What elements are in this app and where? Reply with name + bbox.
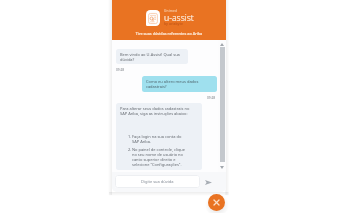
button[interactable]: Como eu altero meus dados cadastrais? [142,76,217,92]
staticText: 09:28 [116,68,125,72]
staticText: Tire suas dúvidas referentes ao Ariba [112,31,226,36]
button[interactable]: Bem vindo ao U-Assist! Qual sua dúvida? [116,49,188,64]
staticText: Para alterar seus dados cadastrais no SA… [120,106,196,116]
staticText: u-assist [164,12,194,24]
staticText: Unimed [164,9,178,13]
staticText: by ariabyte [164,21,183,26]
staticText: Faça login na sua conta do SAP Ariba. [132,134,186,144]
staticText: 09:28 [207,96,216,100]
button[interactable]: Enviar mensagem [201,175,215,189]
button[interactable]: Digite sua dúvida [115,175,200,188]
staticText: Digite sua dúvida [141,179,174,184]
staticText: No painel de controle, clique no seu nom… [132,147,186,167]
staticText: 1. [128,134,132,139]
button[interactable]: Fechar chat [208,194,225,211]
staticText: 2. [128,147,132,152]
staticText: Como eu altero meus dados cadastrais? [146,79,214,89]
staticText: Bem vindo ao U-Assist! Qual sua dúvida? [120,52,185,62]
button[interactable]: Para alterar seus dados cadastrais no SA… [116,103,202,170]
